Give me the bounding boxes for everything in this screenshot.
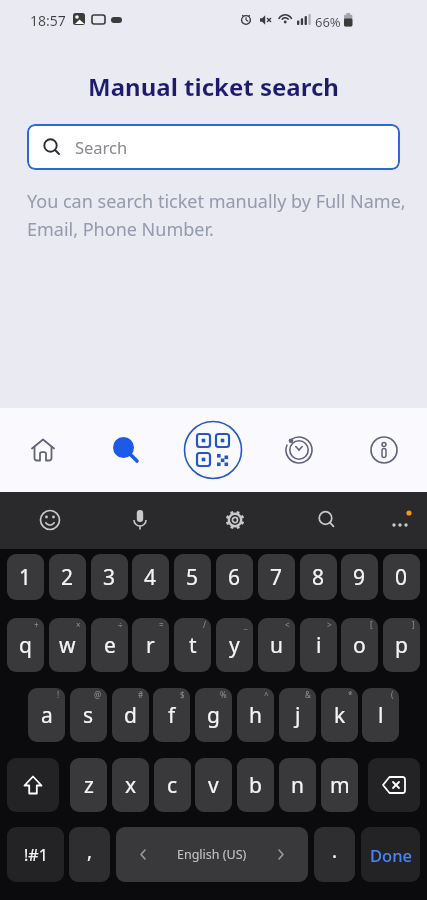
staticText: j — [295, 701, 301, 730]
staticText: Done — [370, 844, 412, 866]
button[interactable]: b — [237, 758, 274, 812]
button[interactable]: 8 — [300, 554, 337, 600]
button[interactable]: w — [49, 618, 86, 672]
button[interactable] — [362, 428, 406, 472]
button[interactable]: l — [362, 688, 399, 742]
button[interactable] — [277, 428, 321, 472]
staticText: o — [353, 631, 366, 660]
staticText: u — [270, 631, 283, 660]
button[interactable]: 6 — [216, 554, 253, 600]
button[interactable]: n — [279, 758, 316, 812]
staticText: You can search ticket manually by Full N… — [27, 189, 406, 241]
staticText: e — [104, 631, 116, 660]
button[interactable]: y — [216, 618, 253, 672]
button[interactable]: i — [300, 618, 337, 672]
staticText: % — [220, 689, 227, 700]
button[interactable]: v — [195, 758, 232, 812]
staticText: i — [316, 631, 322, 660]
button[interactable]: g — [195, 688, 232, 742]
button[interactable] — [30, 500, 70, 540]
button[interactable]: , — [69, 827, 110, 882]
staticText: l — [378, 701, 384, 730]
button[interactable]: English (US) — [116, 827, 308, 882]
button[interactable]: z — [70, 758, 107, 812]
button[interactable] — [182, 419, 244, 481]
staticText: m — [330, 771, 350, 800]
staticText: 5 — [186, 563, 199, 592]
staticText: English (US) — [177, 846, 247, 863]
button[interactable]: e — [91, 618, 128, 672]
button[interactable]: s — [70, 688, 107, 742]
button[interactable]: Done — [361, 827, 420, 882]
staticText: v — [208, 771, 219, 800]
button[interactable]: a — [28, 688, 65, 742]
staticText: 4 — [144, 563, 157, 592]
button[interactable]: 3 — [91, 554, 128, 600]
button[interactable]: 7 — [258, 554, 295, 600]
button[interactable] — [380, 500, 420, 540]
staticText: r — [146, 631, 155, 660]
button[interactable]: o — [341, 618, 378, 672]
staticText: 7 — [270, 563, 283, 592]
button[interactable] — [21, 428, 65, 472]
staticText: y — [229, 631, 240, 660]
button[interactable]: p — [383, 618, 420, 672]
staticText: # — [138, 689, 144, 700]
staticText: @ — [94, 689, 102, 700]
button[interactable]: 9 — [341, 554, 378, 600]
staticText: , — [87, 838, 93, 864]
staticText: [ — [370, 619, 373, 630]
staticText: f — [168, 701, 176, 730]
staticText: 6 — [228, 563, 241, 592]
button[interactable]: . — [314, 827, 355, 882]
button[interactable]: d — [112, 688, 149, 742]
button[interactable]: 0 — [383, 554, 420, 600]
button[interactable] — [104, 428, 148, 472]
staticText: + — [34, 619, 39, 630]
staticText: Search — [75, 136, 128, 158]
button[interactable]: h — [237, 688, 274, 742]
button[interactable]: x — [112, 758, 149, 812]
button[interactable]: f — [153, 688, 190, 742]
button[interactable]: j — [279, 688, 316, 742]
staticText: < — [285, 619, 290, 630]
button[interactable] — [307, 500, 347, 540]
button[interactable]: m — [321, 758, 358, 812]
staticText: g — [207, 701, 220, 730]
button[interactable]: u — [258, 618, 295, 672]
button[interactable]: 1 — [7, 554, 44, 600]
staticText: ÷ — [118, 619, 123, 630]
staticText: $ — [180, 689, 185, 700]
staticText: 3 — [103, 563, 116, 592]
staticText: 8 — [312, 563, 325, 592]
button[interactable]: 4 — [132, 554, 169, 600]
button[interactable]: k — [321, 688, 358, 742]
button[interactable]: c — [154, 758, 191, 812]
staticText: n — [291, 771, 304, 800]
staticText: ! — [57, 689, 60, 700]
staticText: p — [395, 631, 408, 660]
staticText: ( — [391, 689, 394, 700]
staticText: s — [83, 701, 94, 730]
staticText: × — [76, 619, 81, 630]
button[interactable]: r — [132, 618, 169, 672]
button[interactable] — [368, 758, 420, 812]
button[interactable] — [7, 758, 59, 812]
staticText: Manual ticket search — [0, 70, 427, 103]
staticText: z — [84, 771, 94, 800]
button[interactable]: q — [7, 618, 44, 672]
button[interactable]: Search — [27, 124, 400, 170]
staticText: / — [203, 619, 206, 630]
staticText: h — [249, 701, 262, 730]
staticText: ] — [412, 619, 415, 630]
staticText: d — [124, 701, 137, 730]
button[interactable]: !#1 — [7, 827, 64, 882]
staticText: c — [167, 771, 178, 800]
button[interactable]: 2 — [49, 554, 86, 600]
button[interactable] — [120, 500, 160, 540]
button[interactable] — [215, 500, 255, 540]
button[interactable]: 5 — [174, 554, 211, 600]
staticText: _ — [244, 619, 248, 630]
staticText: ^ — [264, 689, 269, 700]
button[interactable]: t — [174, 618, 211, 672]
